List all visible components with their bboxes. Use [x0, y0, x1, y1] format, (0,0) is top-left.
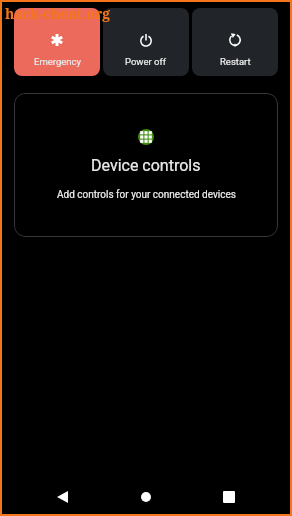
staticText: hack-cheat.org [5, 4, 111, 23]
staticText: Device controls [91, 156, 201, 175]
button[interactable]: Back [43, 478, 81, 516]
staticText: Add controls for your connected devices [57, 189, 236, 201]
button[interactable]: Emergency [14, 8, 100, 76]
staticText: Emergency [34, 56, 81, 67]
staticText: Restart [220, 56, 251, 67]
button[interactable]: Restart [192, 8, 278, 76]
staticText: Power off [125, 56, 167, 67]
button[interactable]: Power off [103, 8, 189, 76]
button[interactable]: Device controls [14, 93, 278, 237]
button[interactable]: Home [127, 478, 165, 516]
button[interactable]: Recents [210, 478, 248, 516]
